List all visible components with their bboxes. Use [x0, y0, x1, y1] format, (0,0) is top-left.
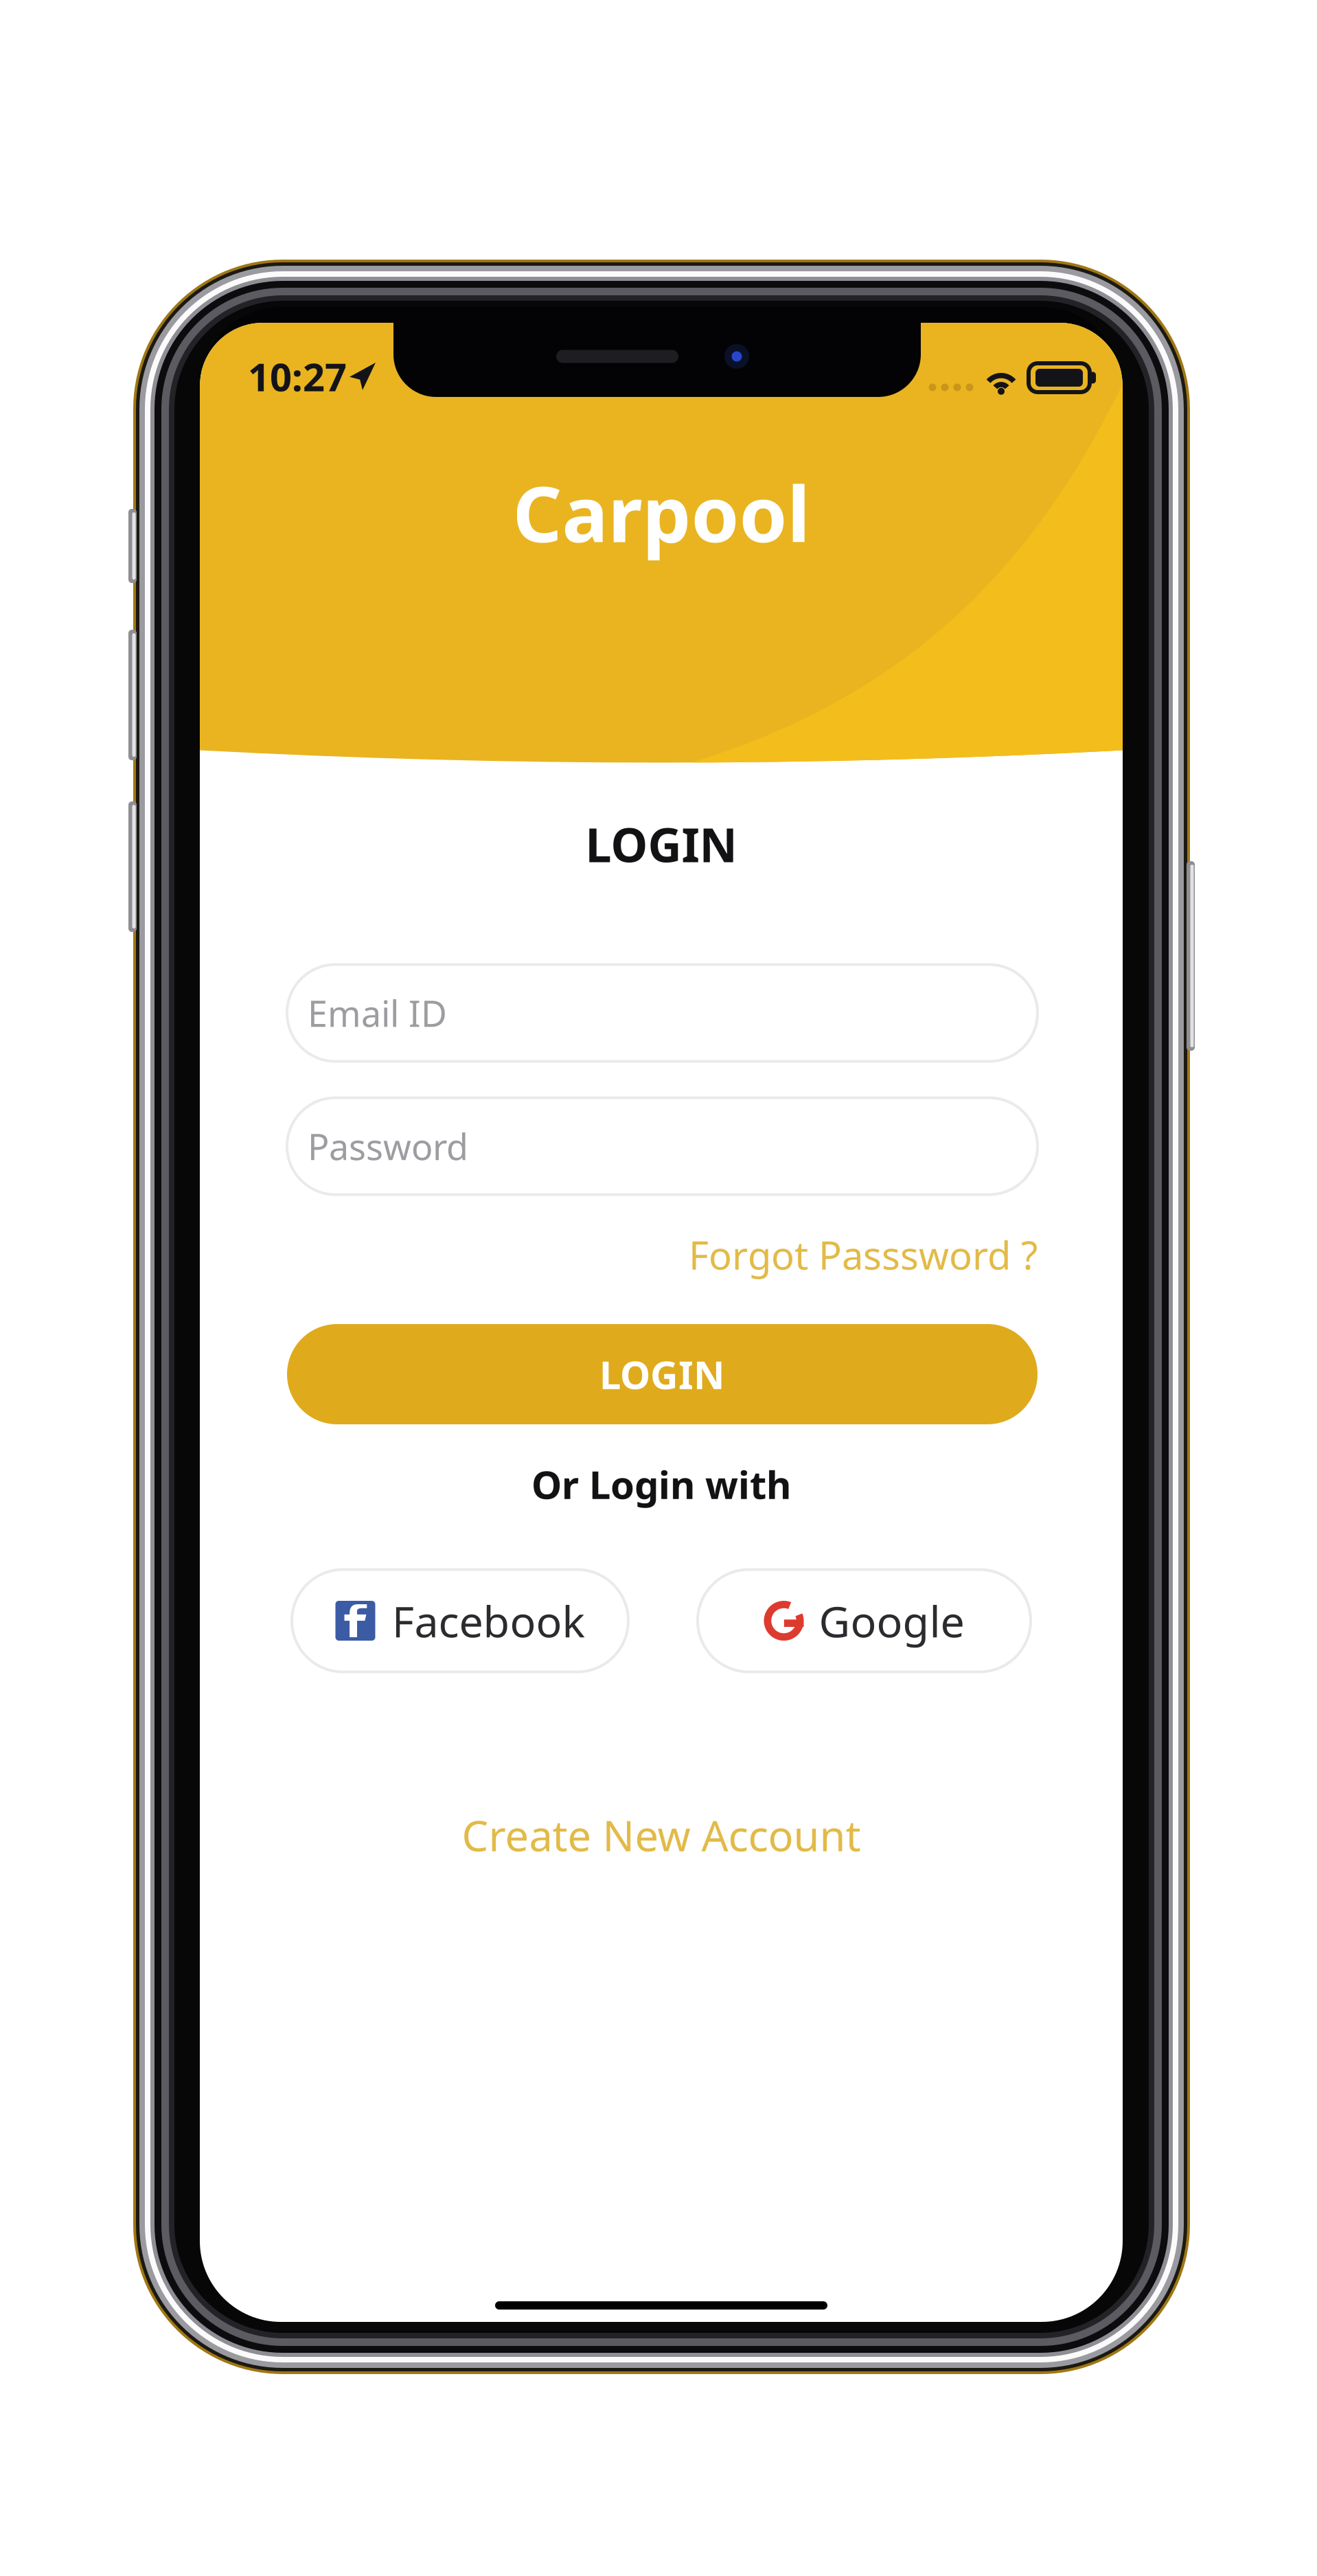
button[interactable]: Forgot Passsword ?: [689, 1229, 1038, 1280]
staticText: LOGIN: [585, 813, 737, 875]
button[interactable]: Password: [287, 1098, 1038, 1195]
staticText: Or Login with: [531, 1459, 791, 1510]
staticText: Facebook: [392, 1592, 585, 1649]
button[interactable]: Facebook: [292, 1570, 628, 1672]
button[interactable]: Email ID: [287, 965, 1038, 1061]
staticText: Carpool: [513, 461, 810, 563]
staticText: Email ID: [308, 989, 447, 1037]
button[interactable]: Google: [698, 1570, 1031, 1672]
staticText: LOGIN: [599, 1349, 725, 1400]
staticText: Forgot Passsword ?: [689, 1229, 1038, 1280]
staticText: Google: [819, 1592, 964, 1649]
staticText: Create New Account: [462, 1807, 861, 1863]
button[interactable]: LOGIN: [287, 1324, 1038, 1424]
staticText: 10:27: [248, 351, 347, 402]
button[interactable]: Create New Account: [462, 1807, 861, 1863]
staticText: Password: [308, 1122, 468, 1170]
